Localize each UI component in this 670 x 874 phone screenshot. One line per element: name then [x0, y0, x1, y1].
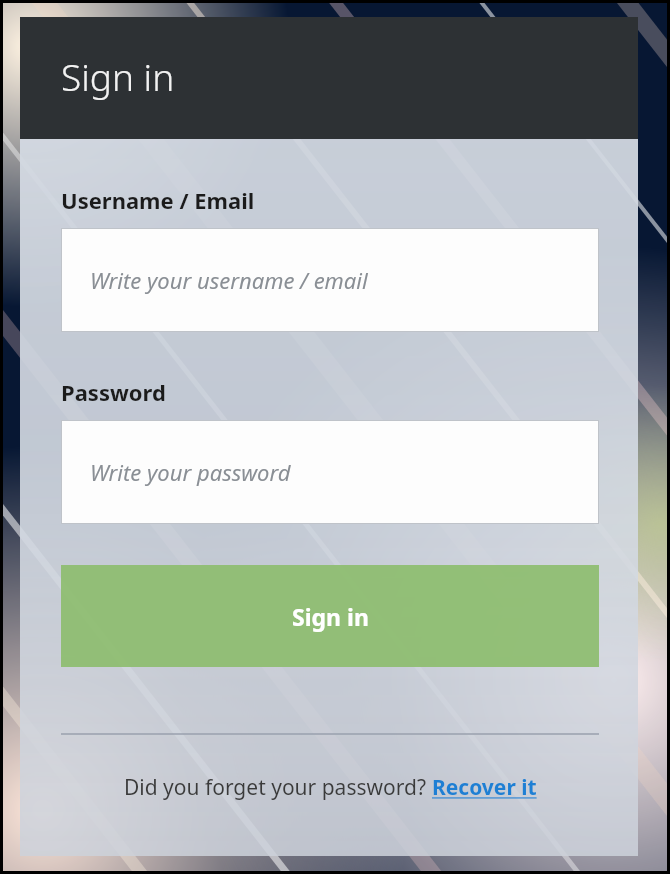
staticText: Recover it — [432, 773, 537, 802]
staticText: Sign in — [61, 51, 175, 101]
staticText: Password — [61, 377, 166, 407]
button[interactable]: Write your username / email — [61, 228, 599, 332]
staticText: Write your password — [90, 457, 291, 487]
staticText: Write your username / email — [90, 265, 368, 295]
button[interactable]: Recover it — [432, 773, 537, 802]
button[interactable]: Sign in — [61, 565, 599, 667]
button[interactable]: Write your password — [61, 420, 599, 524]
staticText: Username / Email — [61, 185, 255, 215]
staticText: Sign in — [292, 601, 369, 632]
staticText: Did you forget your password? — [124, 773, 432, 802]
